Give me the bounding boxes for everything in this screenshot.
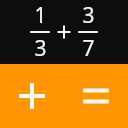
button[interactable]: Equals [64, 64, 128, 128]
button[interactable]: 1 [0, 0, 128, 64]
staticText: 3 [82, 1, 95, 30]
button[interactable]: Plus [0, 64, 64, 128]
staticText: 7 [82, 34, 95, 63]
staticText: 1 [34, 1, 47, 30]
staticText: 3 [34, 34, 47, 63]
